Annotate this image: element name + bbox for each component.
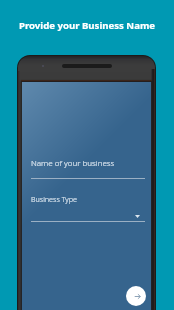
button[interactable]: Next (126, 286, 146, 306)
staticText: Business Type (31, 194, 77, 204)
staticText: Provide your Business Name (19, 19, 156, 32)
staticText: Name of your business (31, 157, 115, 168)
